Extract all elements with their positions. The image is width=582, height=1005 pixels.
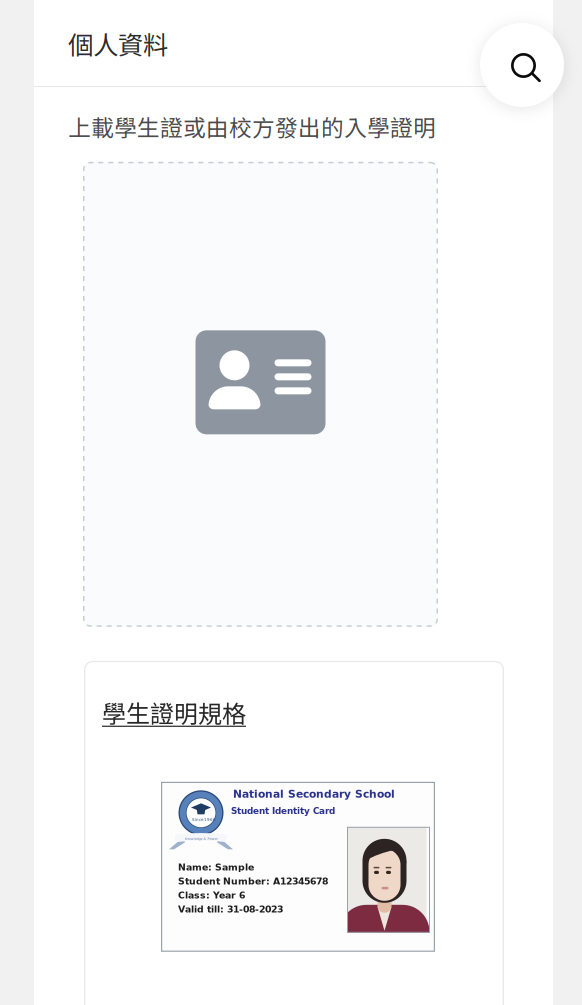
staticText: Class: Year 6 [178, 890, 245, 901]
button[interactable]: Search [480, 23, 564, 107]
staticText: Knowledge & Power [184, 837, 217, 841]
staticText: Student Number: A12345678 [178, 876, 328, 887]
button[interactable]: Upload student ID [83, 162, 438, 627]
staticText: Since 1966 [192, 817, 216, 822]
staticText: 上載學生證或由校方發出的入學證明 [68, 110, 436, 143]
staticText: Student Identity Card [231, 806, 335, 816]
staticText: Name: Sample [178, 862, 254, 873]
staticText: Valid till: 31-08-2023 [178, 904, 283, 915]
staticText: 學生證明規格 [102, 695, 246, 730]
staticText: National Secondary School [233, 788, 395, 800]
staticText: 個人資料 [68, 25, 168, 62]
